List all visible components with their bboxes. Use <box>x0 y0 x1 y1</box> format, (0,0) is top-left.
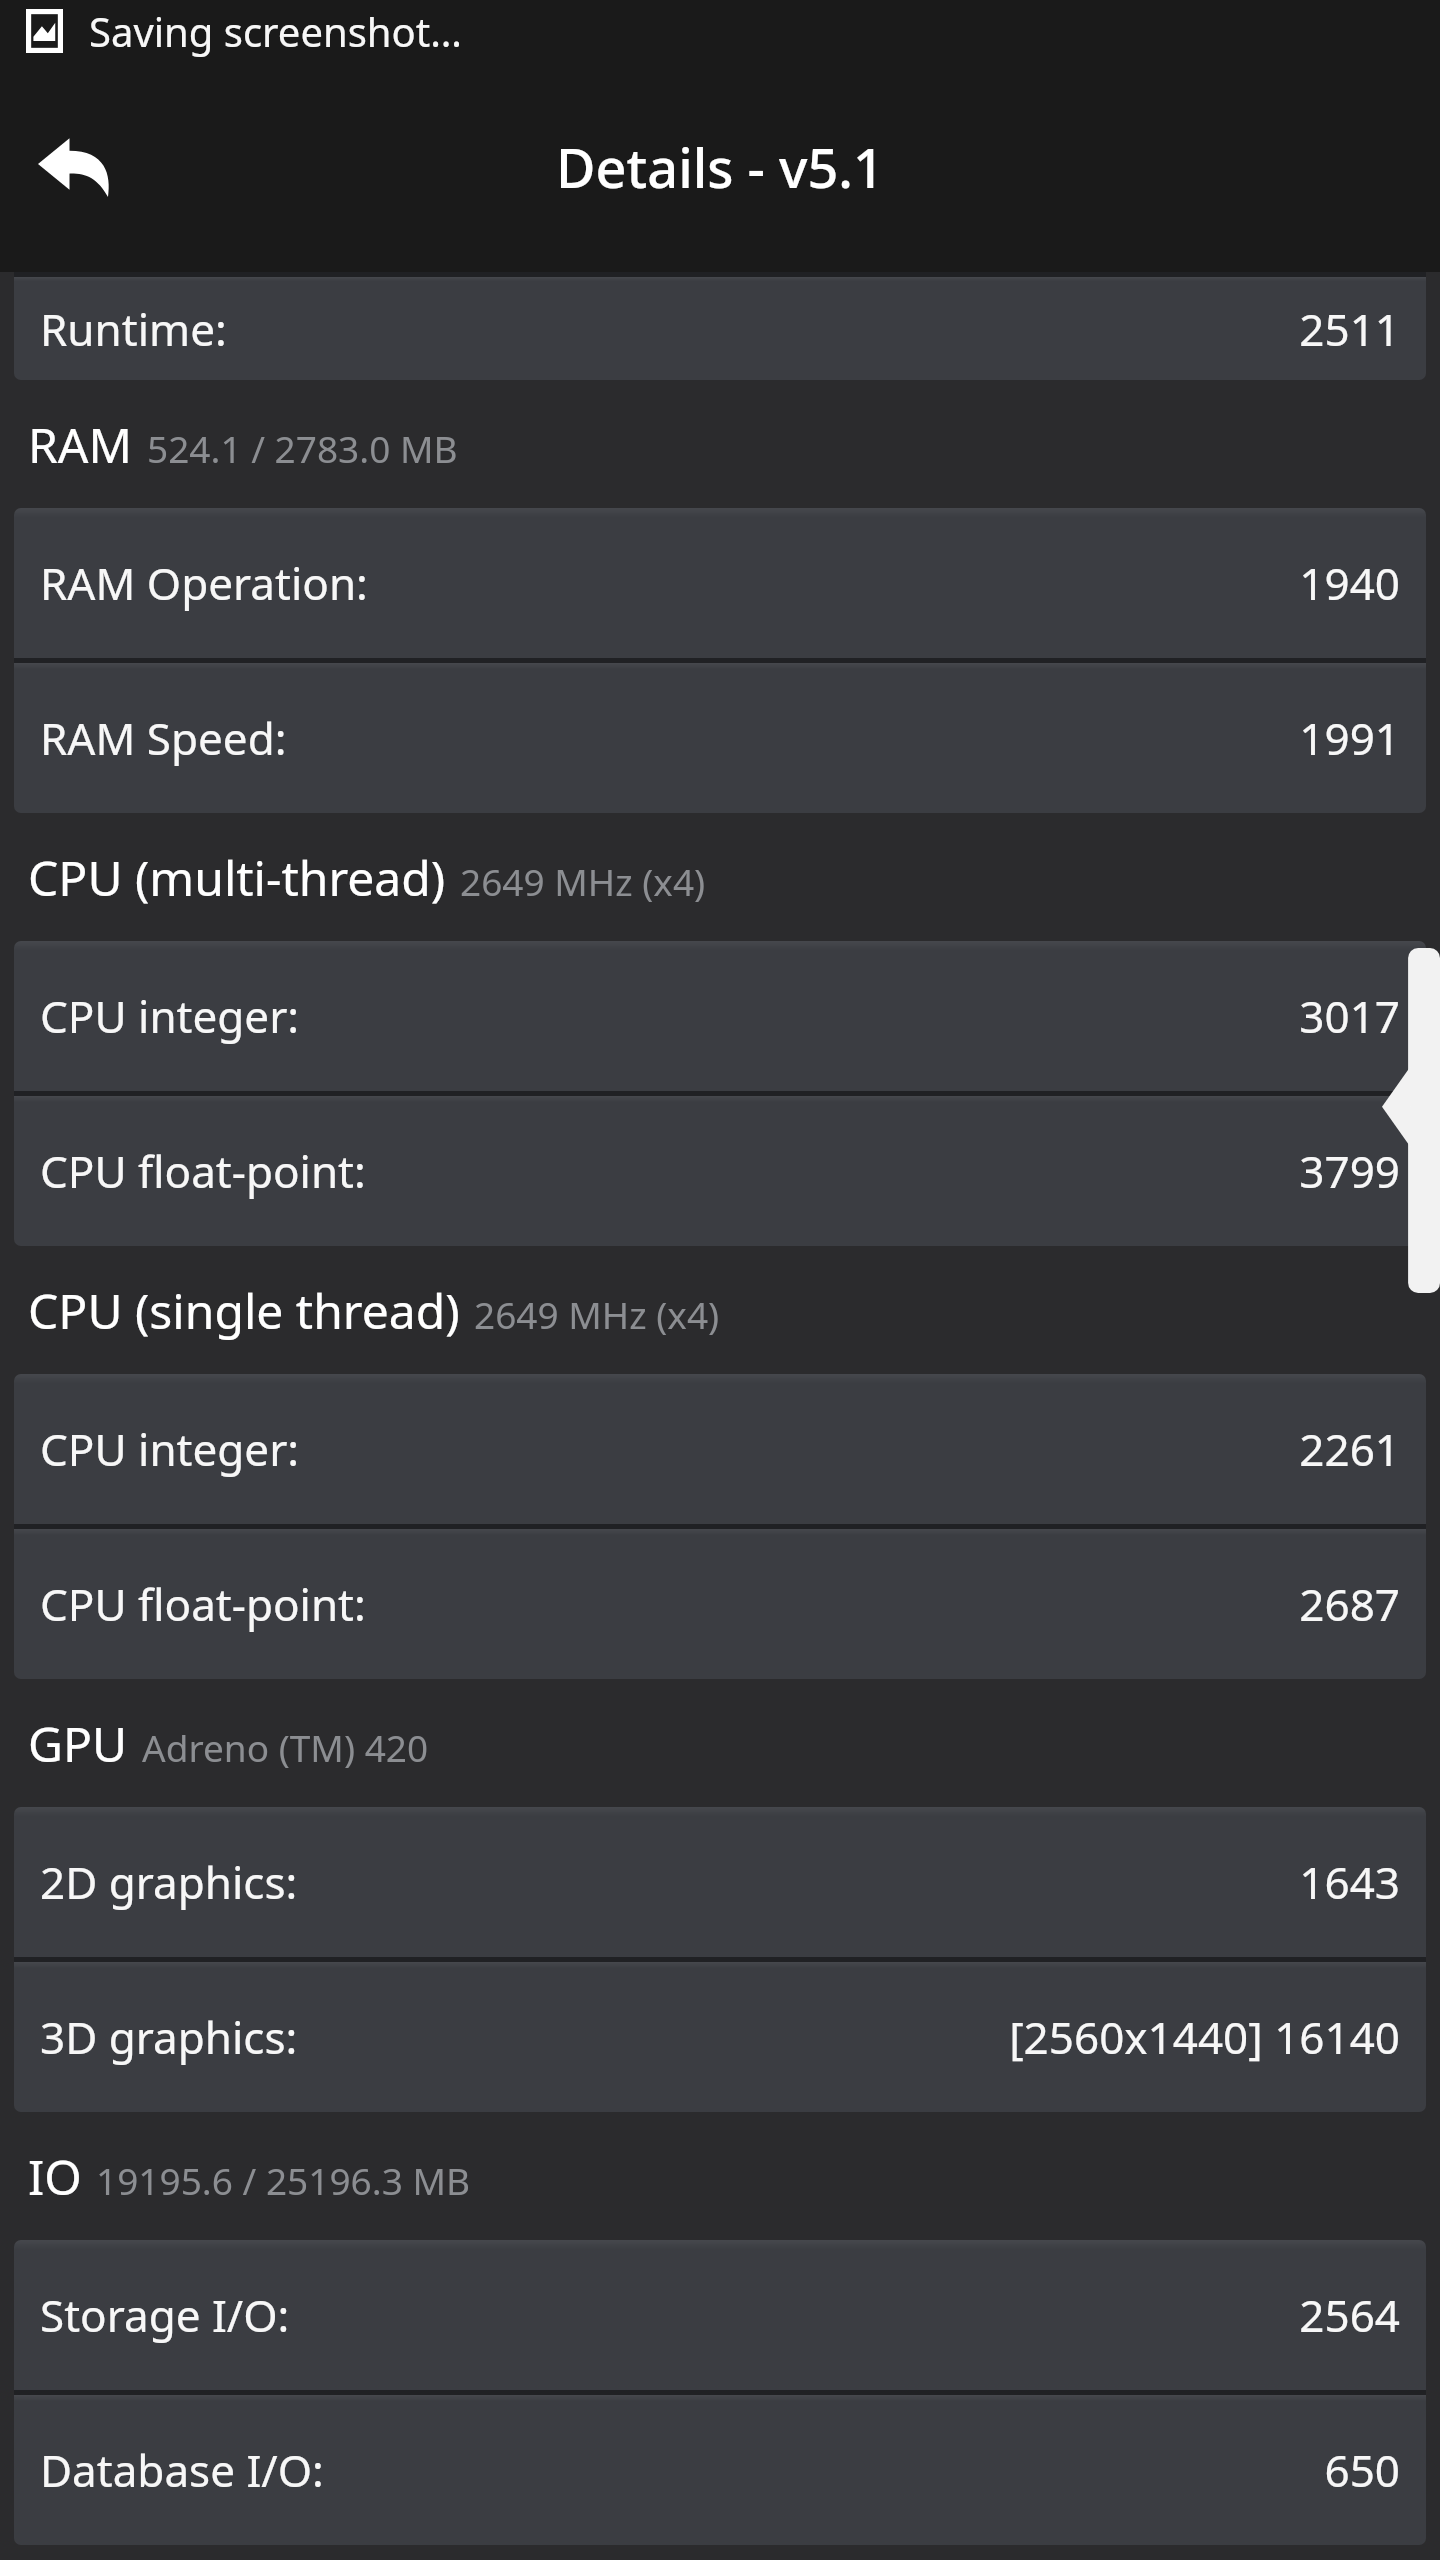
staticText: 2261 <box>1299 1419 1400 1479</box>
button[interactable]: CPU integer: <box>14 1374 1426 1524</box>
staticText: 2D graphics: <box>40 1852 298 1912</box>
button[interactable]: Storage I/O: <box>14 2240 1426 2390</box>
staticText: 19195.6 / 25196.3 MB <box>96 2155 471 2205</box>
button[interactable]: 2D graphics: <box>14 1807 1426 1957</box>
staticText: CPU float-point: <box>40 1574 366 1634</box>
button[interactable]: Runtime: <box>14 277 1426 380</box>
staticText: CPU integer: <box>40 986 300 1046</box>
staticText: Storage I/O: <box>40 2285 290 2345</box>
staticText: GPU <box>28 1711 128 1776</box>
staticText: 1991 <box>1299 708 1400 768</box>
staticText: 2511 <box>1299 299 1400 359</box>
staticText: Database I/O: <box>40 2440 324 2500</box>
staticText: 2687 <box>1299 1574 1400 1634</box>
button[interactable]: CPU float-point: <box>14 1096 1426 1246</box>
staticText: Details - v5.1 <box>556 130 884 204</box>
staticText: RAM <box>28 412 133 477</box>
staticText: 650 <box>1324 2440 1400 2500</box>
button[interactable]: 3D graphics: <box>14 1962 1426 2112</box>
staticText: [2560x1440] 16140 <box>1009 2007 1400 2067</box>
staticText: CPU (multi-thread) <box>28 845 446 910</box>
staticText: Runtime: <box>40 299 227 359</box>
staticText: CPU float-point: <box>40 1141 366 1201</box>
staticText: RAM Speed: <box>40 708 287 768</box>
button[interactable]: Back <box>14 108 132 226</box>
staticText: RAM Operation: <box>40 553 368 613</box>
button[interactable]: Database I/O: <box>14 2395 1426 2545</box>
staticText: 1940 <box>1299 553 1400 613</box>
staticText: Saving screenshot… <box>89 4 462 58</box>
button[interactable]: CPU float-point: <box>14 1529 1426 1679</box>
staticText: 2649 MHz (x4) <box>460 856 706 906</box>
staticText: 3799 <box>1299 1141 1400 1201</box>
button[interactable]: RAM Operation: <box>14 508 1426 658</box>
staticText: 2649 MHz (x4) <box>474 1289 720 1339</box>
staticText: Adreno (TM) 420 <box>142 1722 429 1772</box>
staticText: CPU integer: <box>40 1419 300 1479</box>
staticText: IO <box>28 2144 82 2209</box>
staticText: 524.1 / 2783.0 MB <box>147 423 458 473</box>
staticText: 2564 <box>1299 2285 1400 2345</box>
button[interactable]: CPU integer: <box>14 941 1426 1091</box>
staticText: 1643 <box>1299 1852 1400 1912</box>
staticText: 3D graphics: <box>40 2007 298 2067</box>
button[interactable]: RAM Speed: <box>14 663 1426 813</box>
staticText: 3017 <box>1299 986 1400 1046</box>
staticText: CPU (single thread) <box>28 1278 460 1343</box>
